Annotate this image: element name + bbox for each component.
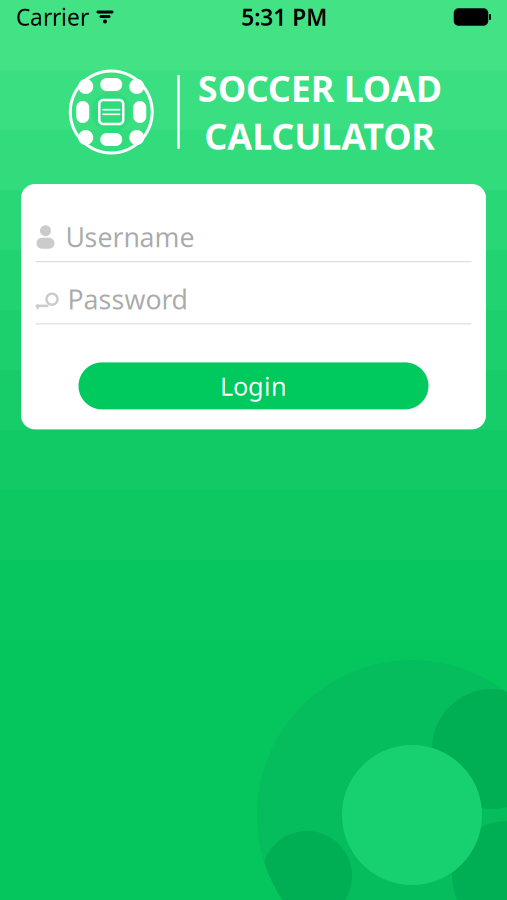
staticText: Carrier — [16, 2, 89, 32]
staticText: Username — [65, 219, 194, 255]
staticText: SOCCER LOAD — [198, 64, 442, 112]
staticText: Login — [220, 369, 287, 403]
staticText: Password — [67, 281, 187, 317]
staticText: CALCULATOR — [204, 112, 435, 160]
staticText: 5:31 PM — [241, 2, 327, 32]
button[interactable]: Login — [78, 362, 428, 409]
